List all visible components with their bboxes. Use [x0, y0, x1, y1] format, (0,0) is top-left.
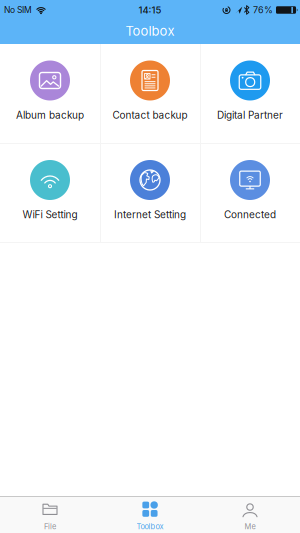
- staticText: Toolbox: [136, 522, 163, 531]
- button[interactable]: File: [0, 497, 100, 533]
- staticText: Internet Setting: [114, 208, 186, 221]
- staticText: Album backup: [16, 109, 84, 121]
- staticText: Toolbox: [125, 23, 174, 39]
- staticText: No SIM: [4, 5, 32, 15]
- button[interactable]: Connected: [200, 143, 300, 243]
- button[interactable]: Internet Setting: [100, 143, 200, 243]
- staticText: 76%: [253, 5, 273, 15]
- button[interactable]: Me: [200, 497, 300, 533]
- staticText: Me: [244, 522, 255, 531]
- button[interactable]: Toolbox: [100, 497, 200, 533]
- button[interactable]: WiFi Setting: [0, 143, 100, 243]
- staticText: Contact backup: [112, 109, 187, 121]
- staticText: File: [44, 522, 56, 531]
- staticText: WiFi Setting: [22, 208, 77, 221]
- button[interactable]: Contact backup: [100, 44, 200, 143]
- staticText: Digital Partner: [217, 109, 283, 121]
- staticText: Connected: [224, 208, 276, 221]
- button[interactable]: Album backup: [0, 44, 100, 143]
- staticText: 14:15: [138, 4, 161, 16]
- button[interactable]: Digital Partner: [200, 44, 300, 143]
